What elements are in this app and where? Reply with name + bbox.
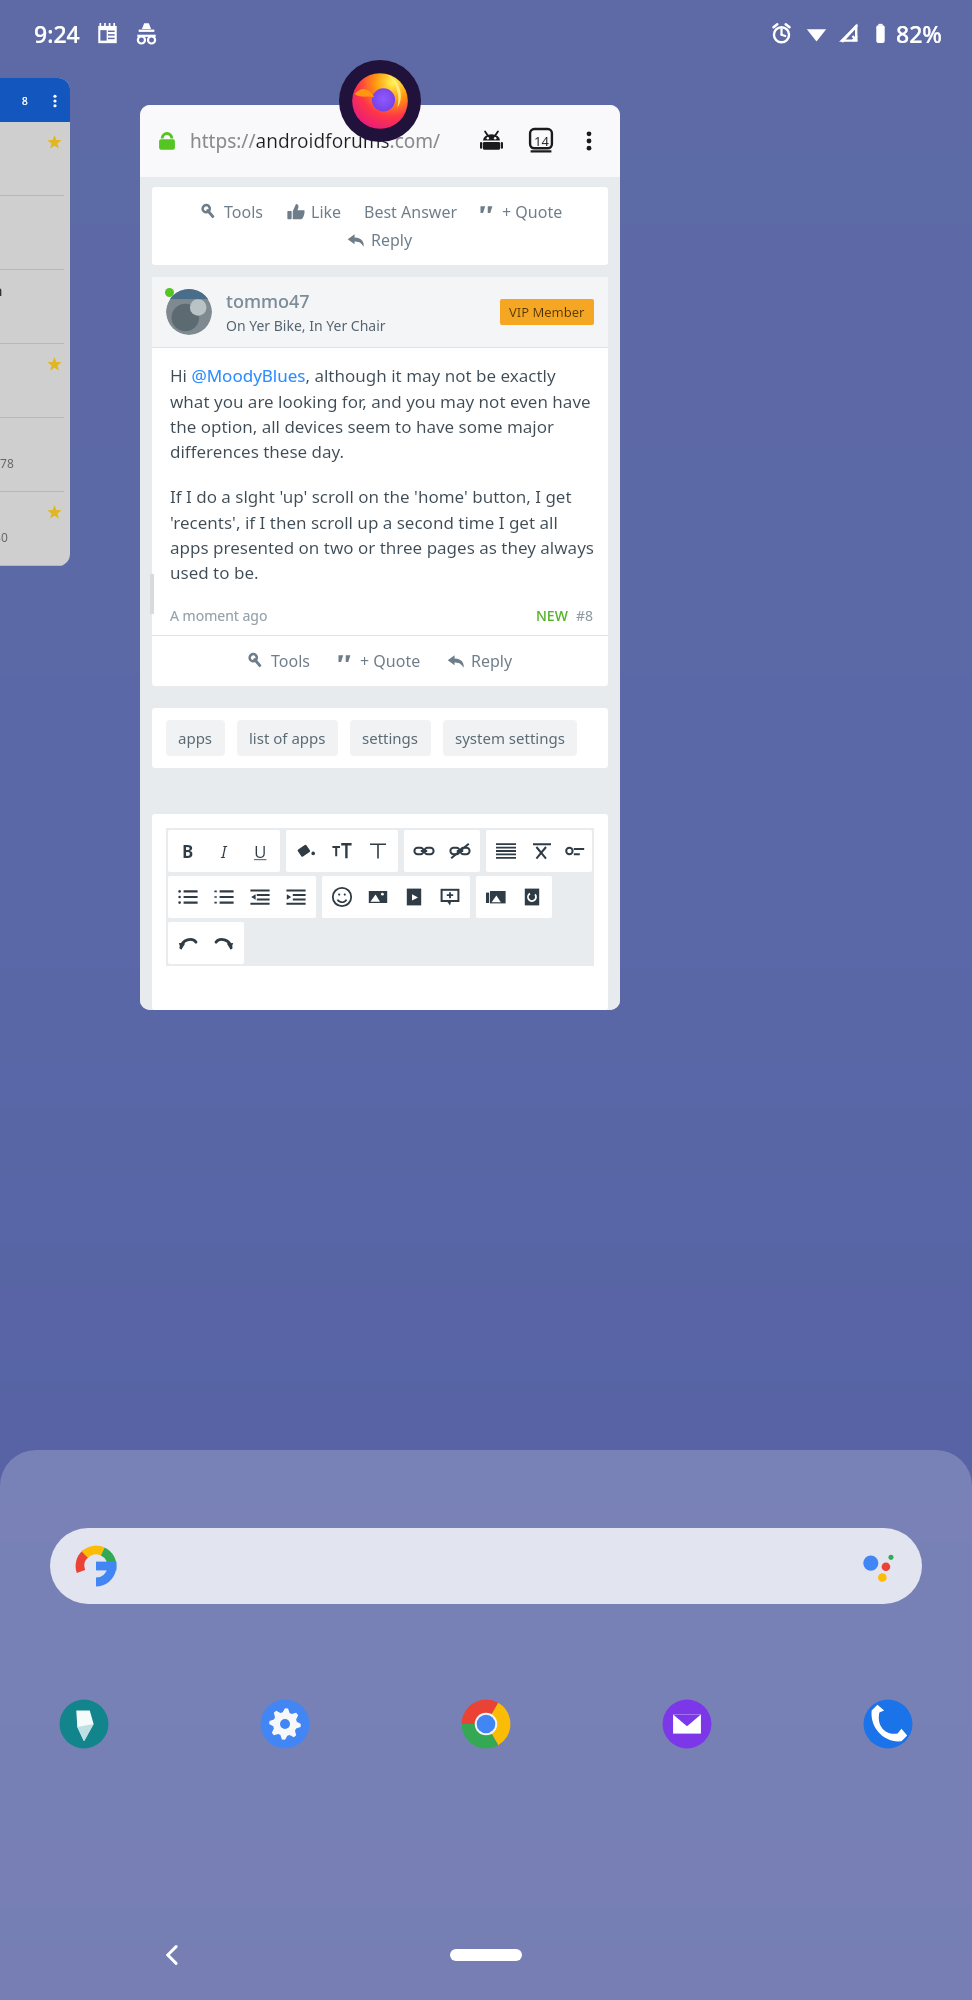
button[interactable]: 8 bbox=[0, 78, 70, 566]
button[interactable]: Align bbox=[488, 833, 524, 869]
staticText: 14 bbox=[534, 132, 549, 150]
button[interactable]: Home bbox=[450, 1949, 522, 1961]
staticText: 2,465 / 233,878 bbox=[0, 455, 14, 471]
staticText: Hi @MoodyBlues, although it may not be e… bbox=[170, 364, 594, 463]
button[interactable]: Phone bbox=[840, 1676, 936, 1772]
staticText: VIP Member bbox=[509, 303, 585, 321]
other: Google Assistant bbox=[860, 1548, 896, 1584]
button[interactable]: Google Search bbox=[50, 1528, 922, 1604]
staticText: Best Answer bbox=[364, 201, 458, 223]
staticText: 82% bbox=[896, 18, 942, 49]
button[interactable]: Clear format bbox=[524, 833, 560, 869]
button[interactable]: Firefox bbox=[339, 60, 421, 142]
button[interactable]: Gallery bbox=[478, 879, 514, 915]
staticText: #8 bbox=[576, 606, 594, 625]
staticText: A moment ago bbox=[170, 606, 268, 625]
button[interactable]: y RPG bbox=[0, 122, 64, 196]
staticText: Reply bbox=[471, 650, 513, 672]
button[interactable]: Tools bbox=[200, 201, 263, 223]
button[interactable]: Reply bbox=[447, 650, 513, 672]
staticText: Like bbox=[311, 201, 342, 223]
button[interactable]: Best Answer bbox=[364, 201, 458, 223]
staticText: Tools bbox=[271, 650, 310, 672]
button[interactable]: Tabs: 14 bbox=[524, 124, 558, 158]
button[interactable]: Video bbox=[396, 879, 432, 915]
staticText: On Yer Bike, In Yer Chair bbox=[226, 316, 386, 335]
button[interactable]: Settings bbox=[237, 1676, 333, 1772]
staticText: I bbox=[221, 840, 227, 863]
button[interactable]: Reply bbox=[347, 229, 413, 251]
button[interactable]: Back bbox=[150, 1932, 196, 1978]
button[interactable]: https://androidforums.com/threa bbox=[140, 105, 620, 1010]
button[interactable]: Insert quote bbox=[432, 879, 468, 915]
button[interactable]: Attach bbox=[514, 879, 550, 915]
button[interactable]: Numbered list bbox=[206, 879, 242, 915]
button[interactable]: Redo bbox=[206, 925, 242, 961]
button[interactable]: system settings bbox=[443, 720, 577, 756]
button[interactable]: Outdent bbox=[242, 879, 278, 915]
staticText: settings bbox=[362, 728, 419, 748]
button[interactable]: s by bbox=[0, 344, 64, 418]
other: Google Search bbox=[76, 1546, 116, 1586]
staticText: system settings bbox=[455, 728, 565, 748]
button[interactable]: Undo bbox=[170, 925, 206, 961]
staticText: Tools bbox=[224, 201, 263, 223]
button[interactable]: Tools bbox=[247, 650, 310, 672]
staticText: https://androidforums.com/threa bbox=[190, 128, 470, 154]
staticText: o (Version bbox=[0, 280, 64, 300]
button[interactable]: o (Version bbox=[0, 270, 64, 344]
staticText: + Quote bbox=[502, 201, 563, 223]
button[interactable]: Chrome bbox=[438, 1676, 534, 1772]
staticText: If I do a slght 'up' scroll on the 'home… bbox=[170, 485, 594, 584]
button[interactable]: Bulleted list bbox=[170, 879, 206, 915]
button[interactable]: Emoji bbox=[324, 879, 360, 915]
button[interactable]: Text color bbox=[288, 833, 324, 869]
button[interactable]: settings bbox=[350, 720, 431, 756]
button[interactable]: + Quote bbox=[478, 201, 563, 223]
button[interactable]: VIP Member bbox=[500, 299, 594, 325]
button[interactable]: Indent bbox=[278, 879, 314, 915]
button[interactable]: I bbox=[206, 833, 242, 869]
button[interactable]: Drive bbox=[36, 1676, 132, 1772]
button[interactable]: + Quote bbox=[336, 650, 421, 672]
button[interactable]: Remove link bbox=[442, 833, 478, 869]
button[interactable]: tommo47 bbox=[152, 277, 608, 686]
staticText: 9:24 bbox=[34, 18, 80, 49]
button[interactable]: Font size bbox=[324, 833, 360, 869]
button[interactable]: e bbox=[0, 418, 64, 492]
staticText: U bbox=[254, 840, 267, 863]
button[interactable]: Inline code bbox=[560, 833, 590, 869]
button[interactable]: Add-ons bbox=[476, 126, 506, 156]
button[interactable]: B bbox=[170, 833, 206, 869]
staticText: apps bbox=[178, 728, 213, 748]
staticText: 217 / ickey280 bbox=[0, 529, 8, 545]
button[interactable]: Insert link bbox=[406, 833, 442, 869]
button[interactable]: Email bbox=[639, 1676, 735, 1772]
button[interactable]: list of apps bbox=[237, 720, 338, 756]
button[interactable]: Font bbox=[360, 833, 396, 869]
staticText: tommo47 bbox=[226, 289, 310, 314]
staticText: NEW bbox=[536, 606, 568, 625]
staticText: B bbox=[182, 840, 194, 863]
button[interactable]: U bbox=[242, 833, 278, 869]
staticText: list of apps bbox=[249, 728, 326, 748]
button[interactable]: Image bbox=[360, 879, 396, 915]
button[interactable]: ? bbox=[0, 492, 64, 566]
staticText: + Quote bbox=[360, 650, 421, 672]
staticText: Reply bbox=[371, 229, 413, 251]
button[interactable]: More options bbox=[574, 126, 604, 156]
button[interactable]: Like bbox=[287, 201, 342, 223]
staticText: 8 bbox=[22, 94, 28, 108]
button[interactable]: apps bbox=[166, 720, 225, 756]
